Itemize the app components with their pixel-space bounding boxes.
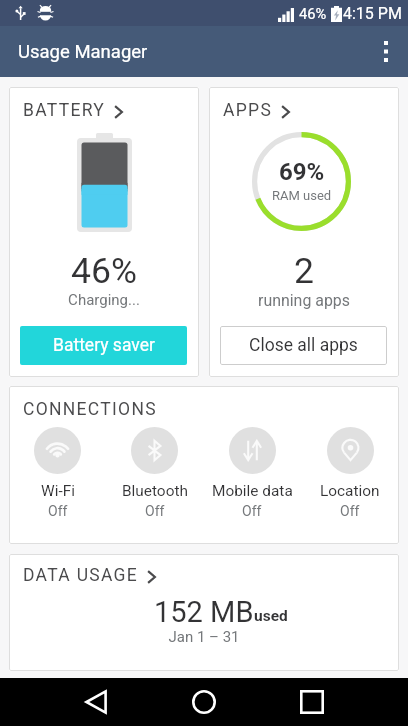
staticText: CONNECTIONS <box>23 399 157 420</box>
button[interactable]: DATA USAGE <box>23 565 156 586</box>
staticText: APPS <box>223 100 273 121</box>
button[interactable]: BATTERY <box>23 100 123 121</box>
button[interactable]: More options <box>364 26 408 77</box>
staticText: Mobile data <box>212 482 293 500</box>
button[interactable]: APPS <box>223 100 290 121</box>
button[interactable]: Mobile data <box>203 427 301 519</box>
button[interactable]: Bluetooth <box>106 427 203 519</box>
staticText: 152 MB <box>154 595 254 629</box>
staticText: used <box>254 607 288 625</box>
staticText: Usage Manager <box>18 41 148 63</box>
staticText: Bluetooth <box>122 482 188 500</box>
staticText: 2 <box>209 250 399 292</box>
staticText: 4:15 PM <box>343 4 402 23</box>
staticText: BATTERY <box>23 100 106 121</box>
staticText: Off <box>145 503 165 519</box>
staticText: DATA USAGE <box>23 565 139 586</box>
staticText: Wi-Fi <box>41 482 75 500</box>
staticText: Off <box>340 503 360 519</box>
staticText: 46% <box>299 5 327 22</box>
button[interactable]: Back <box>62 678 130 726</box>
button[interactable]: Wi-Fi <box>9 427 106 519</box>
staticText: running apps <box>209 291 399 310</box>
button[interactable]: Home <box>170 678 238 726</box>
staticText: 46% <box>9 250 199 292</box>
button[interactable]: Location <box>301 427 399 519</box>
staticText: Off <box>48 503 68 519</box>
button[interactable]: Close all apps <box>220 326 387 365</box>
button[interactable]: Recents <box>278 678 346 726</box>
staticText: RAM used <box>272 188 332 203</box>
staticText: Charging... <box>9 291 199 309</box>
staticText: Jan 1 – 31 <box>9 628 399 646</box>
staticText: Battery saver <box>53 335 155 356</box>
staticText: Off <box>242 503 262 519</box>
button[interactable]: Battery saver <box>20 326 187 365</box>
staticText: Location <box>320 482 380 500</box>
staticText: Close all apps <box>249 335 358 356</box>
staticText: 69% <box>279 158 325 186</box>
